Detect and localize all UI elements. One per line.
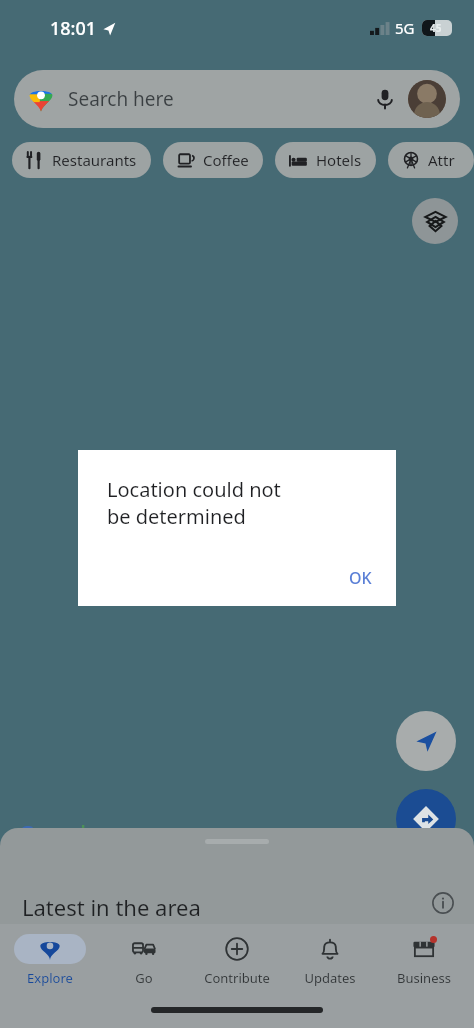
button[interactable]: Explore: [7, 934, 93, 987]
staticText: Search here: [68, 86, 368, 112]
staticText: Hotels: [316, 150, 362, 170]
button[interactable]: Map layers: [412, 198, 458, 244]
button[interactable]: Updates: [287, 934, 373, 987]
staticText: Attractions: [428, 150, 460, 170]
staticText: Business: [397, 969, 451, 987]
staticText: Restaurants: [52, 150, 137, 170]
staticText: Go: [135, 969, 153, 987]
button[interactable]: Contribute: [194, 934, 280, 987]
button[interactable]: Voice search: [368, 82, 402, 116]
button[interactable]: Business: [381, 934, 467, 987]
button[interactable]: Attractions: [388, 142, 474, 178]
staticText: 5G: [395, 18, 415, 38]
button[interactable]: My location: [396, 711, 456, 771]
button[interactable]: Search here: [14, 70, 460, 128]
staticText: OK: [349, 567, 372, 589]
button[interactable]: Information: [430, 890, 456, 916]
staticText: g: [65, 818, 80, 849]
staticText: Latest in the area: [22, 892, 201, 922]
staticText: Coffee: [203, 150, 249, 170]
button[interactable]: Restaurants: [12, 142, 151, 178]
staticText: G: [18, 818, 35, 849]
staticText: o: [50, 818, 65, 849]
staticText: Explore: [27, 969, 73, 987]
button[interactable]: OK: [333, 558, 388, 598]
staticText: Updates: [304, 969, 356, 987]
button[interactable]: Account: [408, 80, 446, 118]
button[interactable]: Go: [101, 934, 187, 987]
staticText: Location could not be determined: [107, 476, 281, 530]
staticText: Contribute: [204, 969, 270, 987]
staticText: 18:01: [50, 16, 97, 41]
button[interactable]: Hotels: [275, 142, 376, 178]
staticText: o: [35, 818, 50, 849]
staticText: l: [80, 818, 87, 849]
button[interactable]: Directions: [396, 789, 456, 849]
staticText: e: [87, 818, 101, 849]
staticText: 45: [430, 21, 442, 35]
button[interactable]: Coffee: [163, 142, 263, 178]
